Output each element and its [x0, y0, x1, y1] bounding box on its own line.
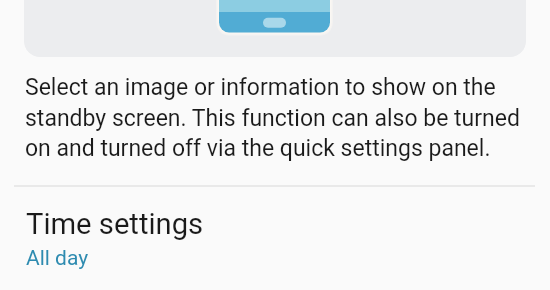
staticText: Time settings — [26, 207, 204, 241]
staticText: All day — [26, 246, 89, 271]
staticText: Select an image or information to show o… — [25, 74, 525, 161]
button[interactable]: Time settings — [0, 196, 550, 285]
